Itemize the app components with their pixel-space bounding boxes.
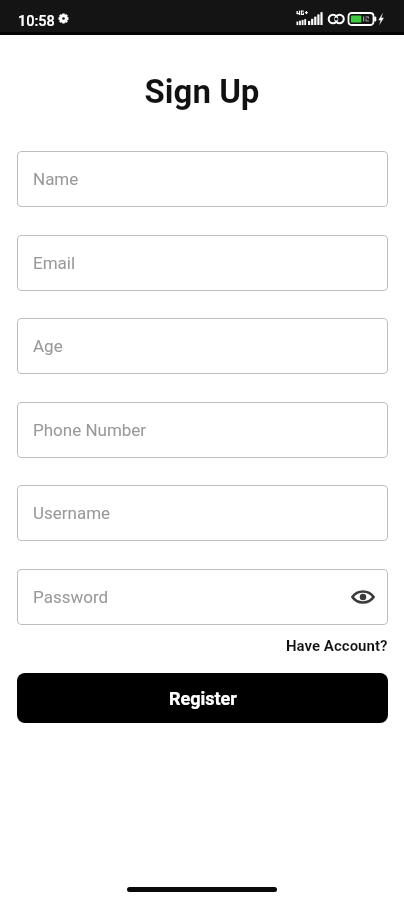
staticText: Email [33, 253, 76, 273]
button[interactable]: Username [17, 485, 388, 541]
staticText: Have Account? [286, 637, 388, 655]
button[interactable]: Email [17, 235, 388, 291]
staticText: Password [33, 587, 109, 607]
button[interactable]: Name [17, 151, 388, 207]
staticText: Age [33, 336, 63, 356]
staticText: Name [33, 169, 79, 189]
button[interactable]: Register [17, 673, 388, 723]
staticText: Phone Number [33, 420, 147, 440]
staticText: 10:58 [18, 13, 55, 30]
button[interactable]: Password [17, 569, 388, 625]
staticText: Username [33, 503, 111, 523]
button[interactable]: Age [17, 318, 388, 374]
staticText: Sign Up [0, 72, 404, 111]
button[interactable]: Phone Number [17, 402, 388, 458]
button[interactable]: Have Account? [286, 635, 388, 657]
staticText: Register [169, 688, 237, 709]
button[interactable]: Show password [347, 581, 379, 613]
